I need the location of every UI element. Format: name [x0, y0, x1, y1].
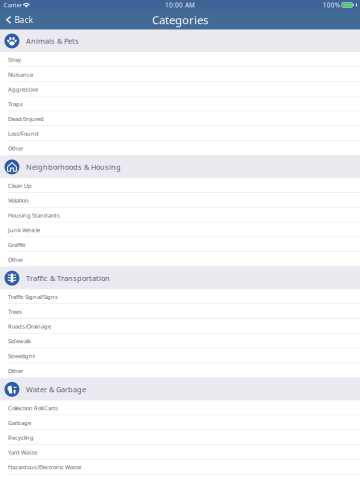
staticText: Junk Vehicle — [8, 226, 40, 234]
staticText: Nuisance — [8, 70, 33, 78]
staticText: Streetlight — [8, 352, 35, 360]
staticText: Back — [14, 14, 32, 25]
staticText: Animals & Pets — [26, 36, 79, 46]
button[interactable]: Stray — [0, 52, 360, 67]
button[interactable]: Nuisance — [0, 67, 360, 82]
staticText: Roads/Drainage — [8, 322, 51, 330]
staticText: Violation — [8, 196, 29, 204]
staticText: Sidewalk — [8, 337, 31, 345]
button[interactable]: Traps — [0, 97, 360, 111]
staticText: Trees — [8, 308, 22, 315]
staticText: Hazardous/Electronic Waste — [8, 463, 81, 471]
staticText: Housing Standards — [8, 211, 60, 219]
staticText: Stray — [8, 56, 21, 63]
button[interactable]: Collection Roll Carts — [0, 401, 360, 415]
button[interactable]: Trees — [0, 304, 360, 319]
staticText: Other — [8, 144, 23, 152]
button[interactable]: Lost/Found — [0, 126, 360, 141]
button[interactable]: Other — [0, 363, 360, 378]
staticText: Recycling — [8, 434, 34, 441]
staticText: Other — [8, 256, 23, 263]
button[interactable]: Streetlight — [0, 348, 360, 363]
button[interactable]: Other — [0, 141, 360, 156]
staticText: Carrier — [3, 1, 21, 9]
staticText: Other — [8, 367, 23, 375]
button[interactable]: Aggressive — [0, 82, 360, 97]
staticText: Clean Up — [8, 182, 32, 189]
button[interactable]: Hazardous/Electronic Waste — [0, 460, 360, 474]
button[interactable]: Clean Up — [0, 178, 360, 193]
staticText: Traps — [8, 100, 23, 108]
staticText: Categories — [152, 12, 208, 27]
staticText: Traffic Signal/Signs — [8, 293, 58, 301]
button[interactable]: Back — [0, 10, 38, 30]
staticText: Yard Waste — [8, 448, 37, 456]
button[interactable]: Housing Standards — [0, 208, 360, 223]
staticText: Graffiti — [8, 241, 25, 249]
button[interactable]: Traffic Signal/Signs — [0, 289, 360, 304]
staticText: Collection Roll Carts — [8, 404, 58, 412]
button[interactable]: Junk Vehicle — [0, 223, 360, 237]
button[interactable]: Dead/Injured — [0, 111, 360, 126]
staticText: Neighborhoods & Housing — [26, 162, 121, 172]
button[interactable]: Garbage — [0, 415, 360, 430]
staticText: Dead/Injured — [8, 115, 44, 123]
staticText: Garbage — [8, 419, 31, 427]
staticText: 10:00 AM — [165, 1, 195, 9]
button[interactable]: Sidewalk — [0, 334, 360, 349]
staticText: 100% — [323, 1, 340, 9]
button[interactable]: Graffiti — [0, 237, 360, 252]
staticText: Aggressive — [8, 85, 38, 93]
button[interactable]: Yard Waste — [0, 445, 360, 460]
button[interactable]: Violation — [0, 193, 360, 208]
button[interactable]: Roads/Drainage — [0, 319, 360, 334]
button[interactable]: Other — [0, 252, 360, 267]
staticText: Water & Garbage — [26, 384, 86, 394]
staticText: Traffic & Transportation — [26, 273, 110, 283]
button[interactable]: Recycling — [0, 430, 360, 445]
staticText: Lost/Found — [8, 130, 39, 137]
